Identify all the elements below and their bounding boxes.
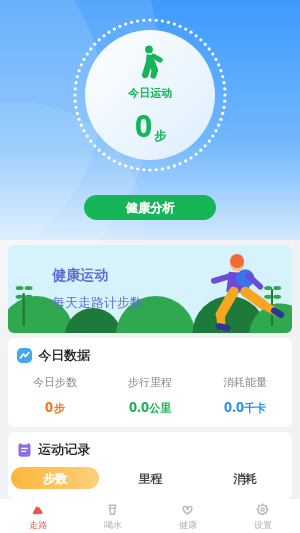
staticText: 喝水 [104, 519, 122, 530]
staticText: 健康 [179, 519, 197, 530]
button[interactable]: 步行里程 [102, 375, 197, 416]
staticText: 公里 [149, 401, 171, 415]
button[interactable]: 里程 [102, 471, 197, 486]
staticText: 千卡 [244, 401, 266, 415]
button[interactable]: 健康分析 [84, 195, 216, 220]
button[interactable]: 步数 [11, 467, 99, 489]
staticText: 0 [135, 105, 153, 146]
staticText: 0.0 [129, 397, 149, 416]
staticText: 0 [45, 397, 54, 416]
button[interactable]: 消耗 [197, 471, 292, 486]
staticText: 步 [54, 401, 65, 415]
button[interactable]: 走路 [0, 499, 75, 533]
staticText: 每天走路计步数 [52, 294, 143, 310]
button[interactable]: 健康运动 [8, 245, 292, 333]
staticText: 走路 [29, 519, 47, 530]
staticText: 健康运动 [52, 267, 108, 285]
staticText: 步 [154, 128, 166, 143]
staticText: 步数 [43, 471, 67, 486]
button[interactable]: 今日步数 [8, 375, 102, 416]
staticText: 今日数据 [38, 347, 90, 363]
staticText: 运动记录 [38, 441, 90, 457]
staticText: 消耗能量 [223, 375, 267, 389]
staticText: 健康分析 [126, 200, 174, 215]
staticText: 今日运动 [128, 86, 172, 100]
staticText: 今日步数 [33, 375, 77, 389]
button[interactable]: 消耗能量 [197, 375, 292, 416]
staticText: 消耗 [233, 471, 257, 486]
button[interactable]: 健康 [150, 499, 225, 533]
button[interactable]: 喝水 [75, 499, 150, 533]
staticText: 0.0 [224, 397, 244, 416]
staticText: 设置 [254, 519, 272, 530]
staticText: 步行里程 [128, 375, 172, 389]
staticText: 里程 [138, 471, 162, 486]
button[interactable]: 设置 [225, 499, 300, 533]
